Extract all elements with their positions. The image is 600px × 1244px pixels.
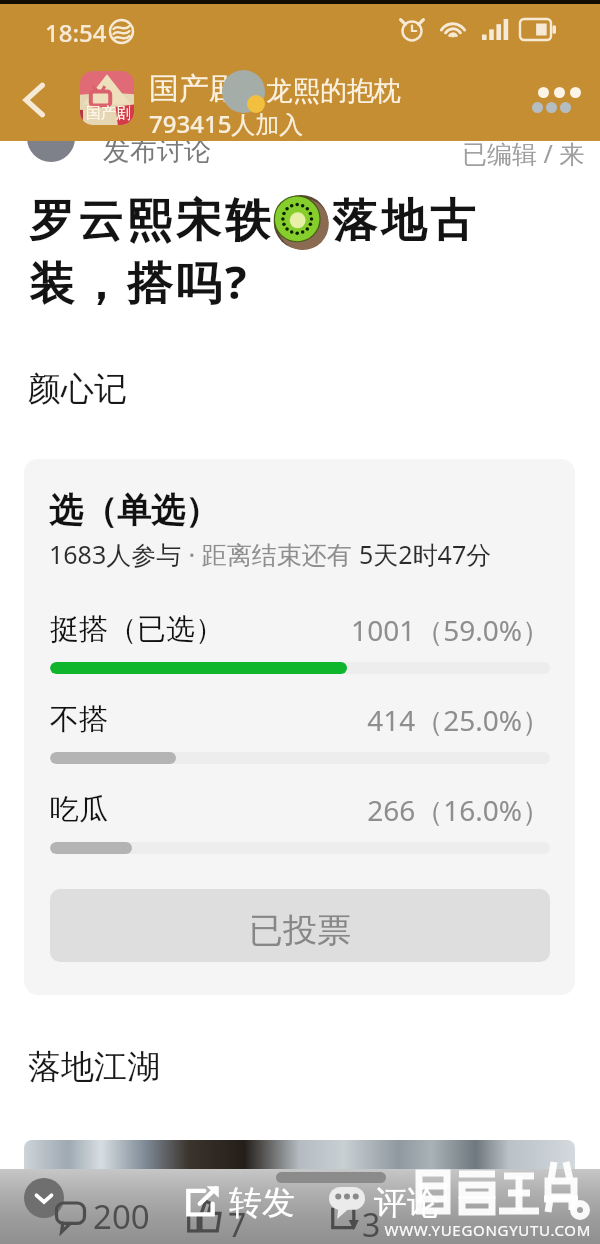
staticText: · 距离结束还有 (182, 537, 359, 571)
button[interactable]: 吃瓜 (50, 791, 550, 829)
staticText: 已编辑 / 来 (462, 136, 585, 170)
staticText: 评论 (374, 1182, 440, 1224)
staticText: 落地古 (330, 193, 477, 250)
button[interactable]: 200 (55, 1194, 150, 1239)
staticText: 转发 (229, 1182, 295, 1224)
staticText: 发布讨论 (103, 134, 211, 168)
staticText: 选（单选） (49, 489, 219, 532)
button[interactable]: Collapse (24, 1178, 64, 1218)
staticText: 挺搭（已选） (50, 611, 224, 648)
staticText: 200 (93, 1194, 150, 1239)
button[interactable]: 转发 (183, 1182, 295, 1224)
staticText: 1683人参与 (49, 537, 182, 571)
staticText: 793415人加入 (149, 107, 304, 140)
staticText: 颜心记 (28, 368, 127, 410)
staticText: 266（16.0%） (50, 791, 550, 829)
staticText: 7 (228, 1203, 247, 1244)
button[interactable]: 评论 (328, 1182, 440, 1224)
staticText: 3 (362, 1203, 381, 1244)
button[interactable]: 不搭 (50, 701, 550, 739)
button[interactable]: Group avatar (80, 71, 134, 125)
staticText: 已投票 (249, 909, 351, 952)
staticText: 18:54 (45, 16, 107, 49)
staticText: 装，搭吗? (29, 251, 251, 312)
button[interactable]: Back (8, 74, 60, 126)
staticText: 1001（59.0%） (50, 611, 550, 649)
staticText: WWW.YUEGONGYUTU.COM (340, 1220, 591, 1240)
staticText: 不搭 (50, 701, 108, 738)
staticText: 国产剧 (86, 104, 131, 123)
staticText: 龙熙的抱枕 (266, 74, 401, 108)
staticText: 414（25.0%） (50, 701, 550, 739)
button[interactable]: 挺搭（已选） (50, 611, 550, 649)
staticText: 落地江湖 (28, 1046, 160, 1088)
staticText: 吃瓜 (50, 791, 108, 828)
button[interactable]: More options (528, 61, 590, 123)
staticText: 国产剧 (149, 70, 239, 108)
button[interactable]: 已投票 (50, 889, 550, 962)
staticText: 5天2时47分 (359, 537, 492, 571)
button[interactable]: Member avatar (222, 70, 266, 114)
staticText: 罗云熙宋轶 (27, 193, 272, 250)
